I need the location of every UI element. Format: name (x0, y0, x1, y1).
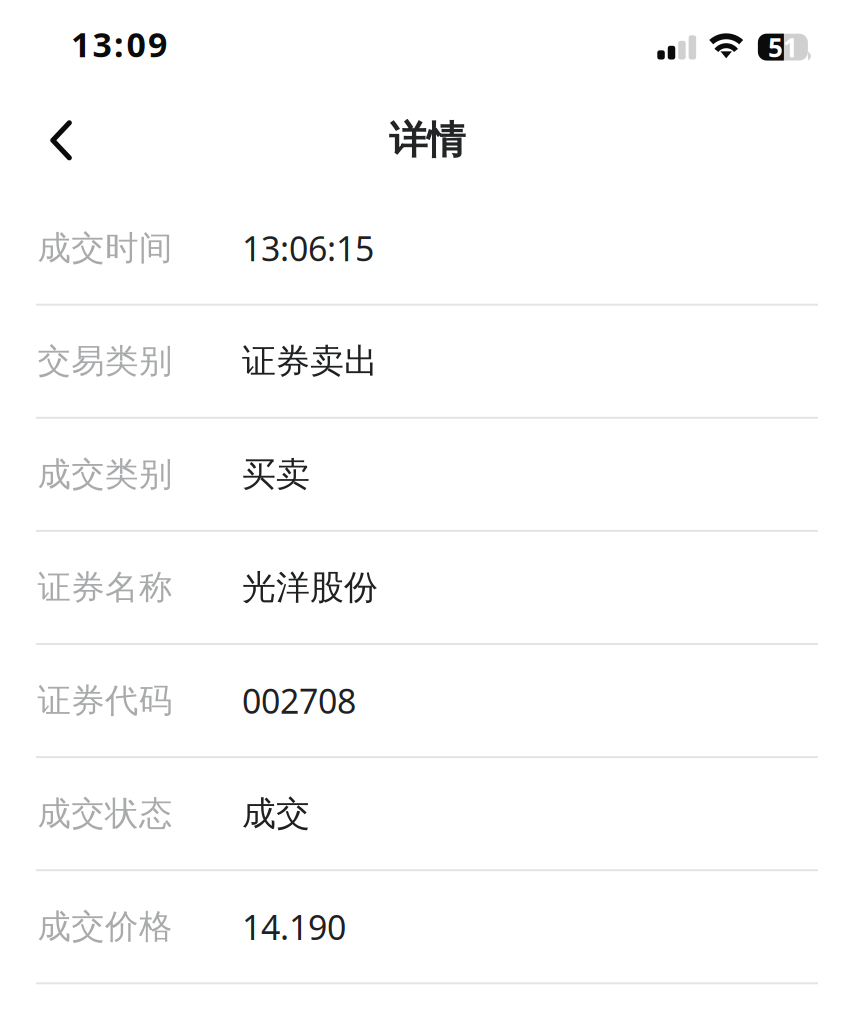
staticText: 13:06:15 (242, 225, 374, 271)
staticText: 详情 (389, 116, 465, 164)
staticText: 交易类别 (37, 340, 172, 382)
staticText: 13:09 (71, 21, 167, 67)
staticText: 成交状态 (37, 793, 172, 835)
staticText: 光洋股份 (242, 566, 378, 609)
button[interactable]: Back (30, 100, 92, 180)
staticText: 成交价格 (37, 906, 172, 948)
staticText: 51 (768, 29, 798, 65)
staticText: 证券卖出 (242, 340, 378, 383)
staticText: 买卖 (242, 453, 310, 496)
staticText: 成交时间 (37, 227, 172, 269)
staticText: 成交类别 (37, 453, 172, 495)
staticText: 成交 (242, 792, 310, 835)
staticText: 002708 (242, 677, 356, 724)
staticText: 证券代码 (37, 680, 172, 722)
staticText: 14.190 (242, 904, 346, 950)
staticText: 证券名称 (37, 566, 172, 608)
